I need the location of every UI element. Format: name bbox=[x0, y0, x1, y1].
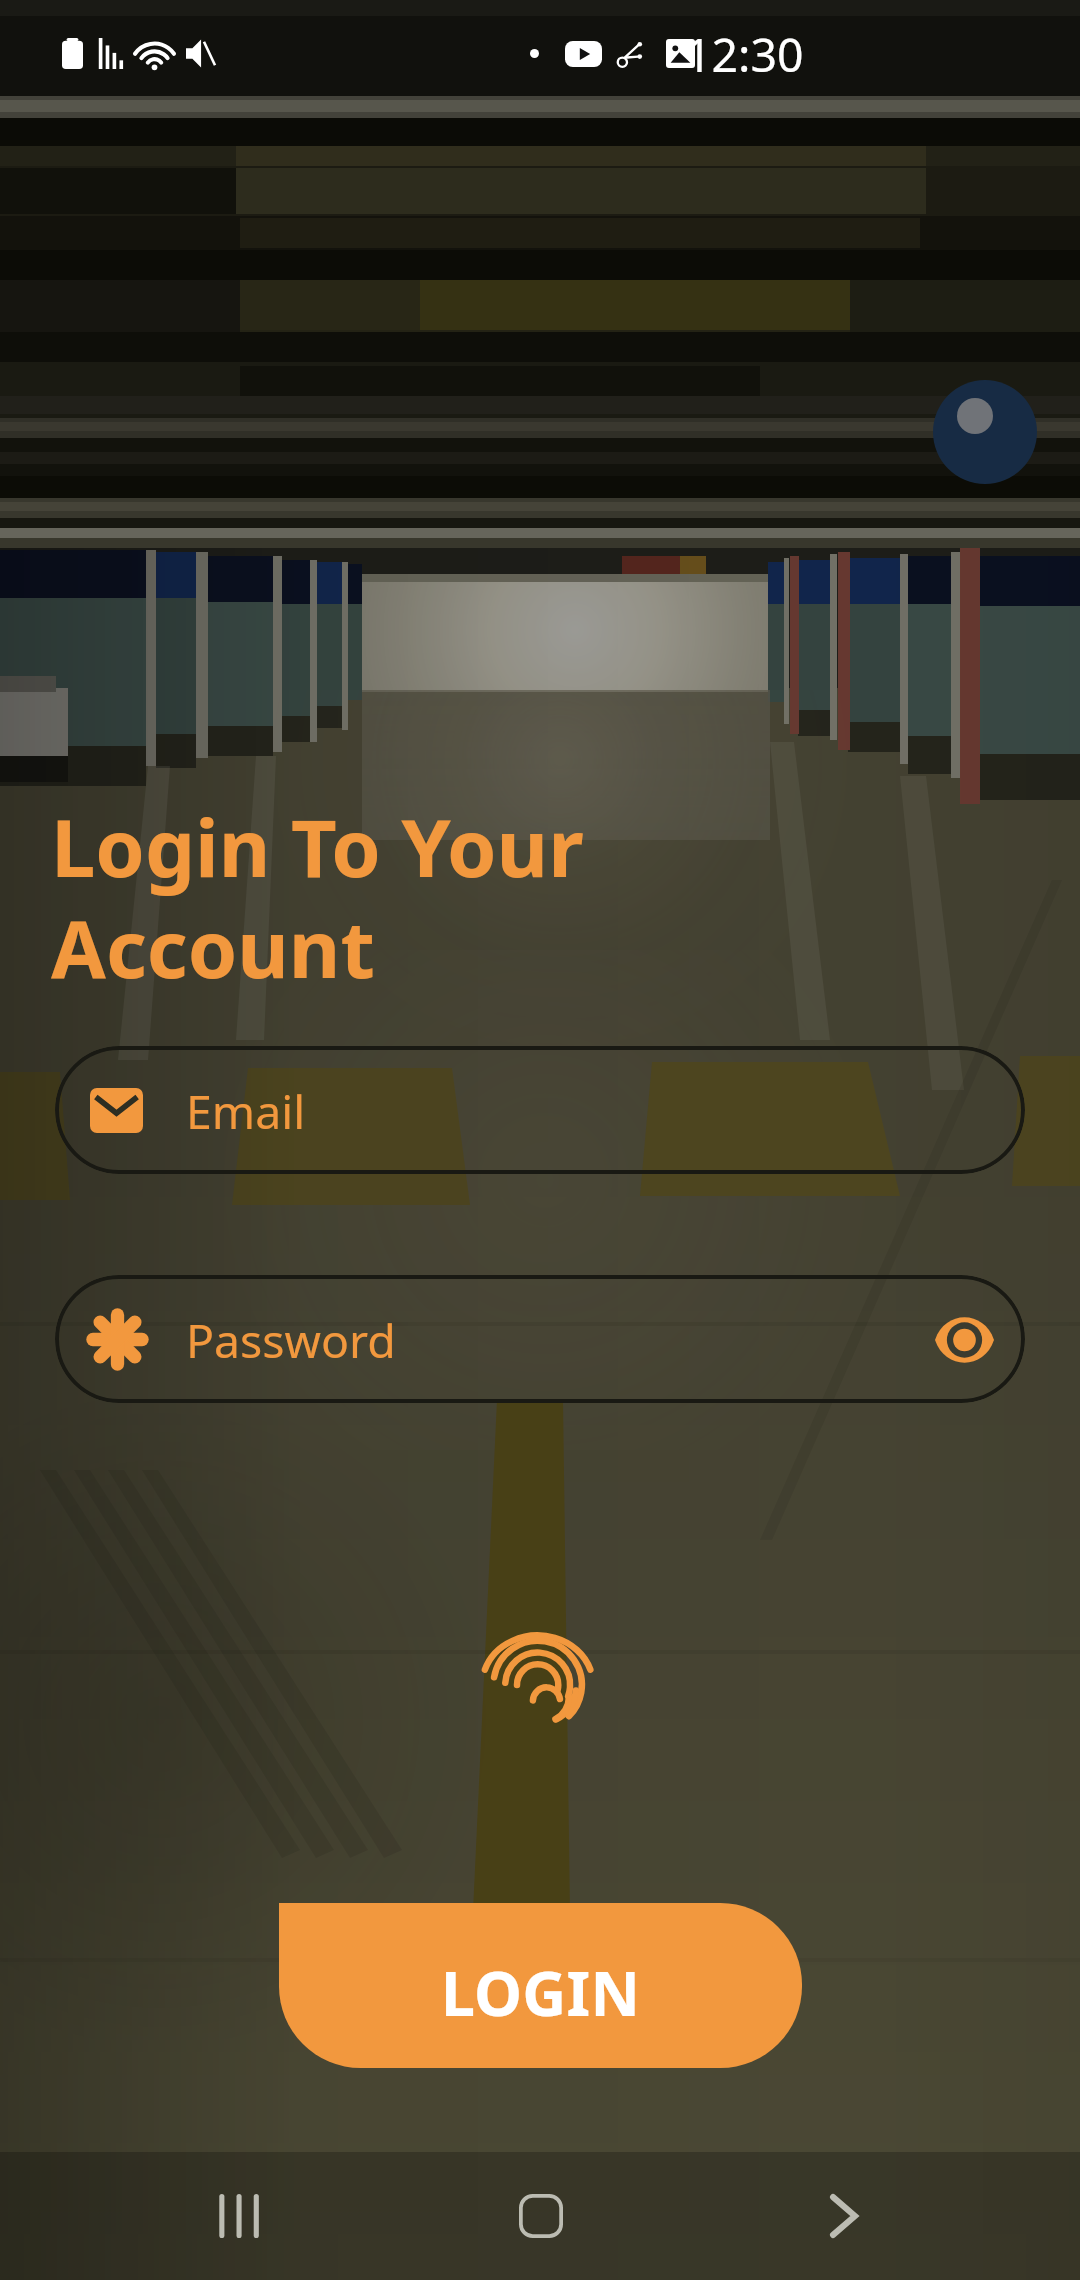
staticText: Email bbox=[186, 1079, 306, 1142]
button[interactable]: Back bbox=[776, 2152, 911, 2280]
button[interactable]: LOGIN bbox=[279, 1903, 802, 2068]
button[interactable]: Home bbox=[473, 2152, 608, 2280]
button[interactable]: Password bbox=[55, 1275, 1025, 1403]
button[interactable]: Show password bbox=[928, 1303, 1001, 1376]
button[interactable]: Fingerprint login bbox=[481, 1626, 599, 1744]
staticText: Password bbox=[186, 1308, 396, 1371]
staticText: Login To Your Account bbox=[51, 792, 584, 1002]
button[interactable]: Email bbox=[55, 1046, 1025, 1174]
staticText: 12:30 bbox=[685, 22, 804, 85]
staticText: LOGIN bbox=[441, 1951, 641, 2034]
button[interactable]: Recents bbox=[169, 2152, 304, 2280]
